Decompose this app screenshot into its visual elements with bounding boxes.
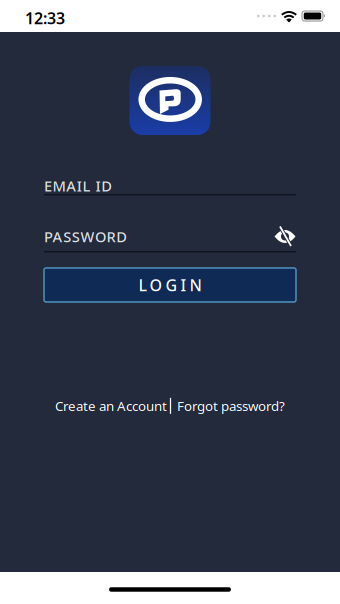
- staticText: Create an Account: [55, 397, 167, 415]
- button[interactable]: LOGIN: [44, 268, 296, 302]
- button[interactable]: Create an Account: [55, 397, 167, 415]
- staticText: 12:33: [25, 7, 65, 29]
- button[interactable]: Forgot password?: [171, 397, 285, 415]
- button[interactable]: PASSWORD: [44, 226, 296, 252]
- staticText: Forgot password?: [177, 397, 285, 415]
- staticText: EMAIL ID: [44, 176, 112, 195]
- staticText: PASSWORD: [44, 227, 127, 246]
- button[interactable]: EMAIL ID: [44, 176, 296, 195]
- staticText: LOGIN: [138, 274, 201, 296]
- button[interactable]: [274, 226, 296, 246]
